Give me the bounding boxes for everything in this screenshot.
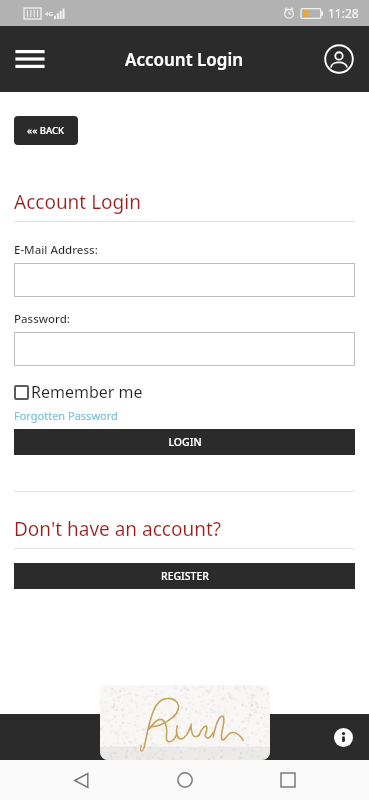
button[interactable]: «« BACK [14, 116, 78, 145]
button[interactable]: LOGIN [14, 429, 355, 455]
button[interactable]: Home [163, 760, 207, 800]
staticText: Password: [14, 311, 70, 327]
button[interactable] [14, 332, 355, 366]
staticText: REGISTER [161, 569, 209, 583]
button[interactable]: Information [329, 723, 357, 751]
staticText: Account Login [125, 48, 244, 71]
button[interactable]: Recents [266, 760, 310, 800]
staticText: Account Login [14, 189, 141, 215]
button[interactable]: Menu [10, 39, 50, 79]
staticText: «« BACK [27, 124, 65, 137]
button[interactable] [14, 263, 355, 297]
staticText: Don't have an account? [14, 516, 222, 542]
staticText: Remember me [31, 381, 143, 403]
button[interactable]: REGISTER [14, 563, 355, 589]
staticText: E-Mail Address: [14, 242, 98, 258]
button[interactable]: Back [59, 760, 103, 800]
button[interactable]: Account [319, 39, 359, 79]
button[interactable]: Forgotten Password [14, 408, 118, 423]
staticText: 11:28 [328, 5, 359, 21]
staticText: 4G [45, 10, 53, 18]
button[interactable]: Remember me [14, 381, 143, 403]
staticText: Forgotten Password [14, 408, 118, 423]
button[interactable]: Plush [100, 685, 270, 760]
staticText: LOGIN [168, 435, 202, 449]
